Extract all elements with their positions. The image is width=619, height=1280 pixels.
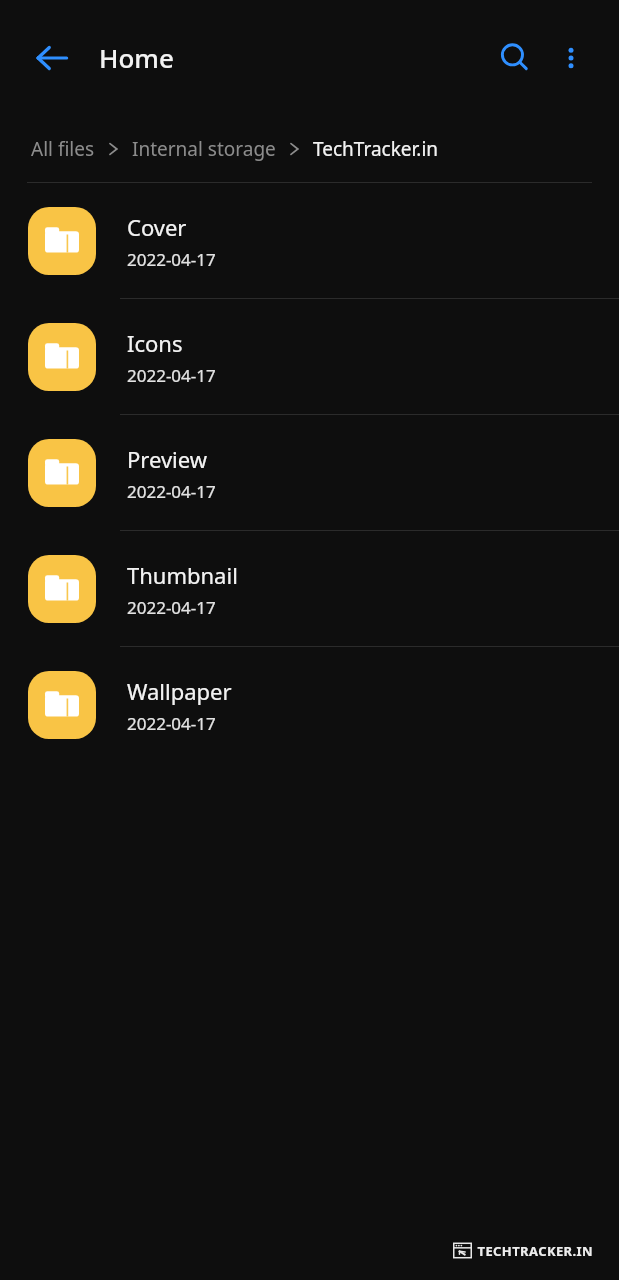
button[interactable]: Preview	[0, 415, 619, 531]
staticText: Icons	[127, 328, 183, 358]
staticText: TechTracker.in	[313, 136, 439, 162]
staticText: Thumbnail	[127, 560, 238, 590]
button[interactable]: Cover	[0, 183, 619, 299]
staticText: 2022-04-17	[127, 364, 216, 387]
staticText: 2022-04-17	[127, 248, 216, 271]
staticText: Wallpaper	[127, 676, 232, 706]
staticText: 2022-04-17	[127, 712, 216, 735]
button[interactable]: TechTracker.in	[311, 132, 441, 166]
button[interactable]: Wallpaper	[0, 647, 619, 763]
button[interactable]: Back	[24, 30, 80, 86]
staticText: 2022-04-17	[127, 596, 216, 619]
staticText: Internal storage	[132, 136, 276, 162]
button[interactable]: Internal storage	[130, 132, 278, 166]
staticText: Home	[99, 40, 174, 75]
staticText: Preview	[127, 444, 208, 474]
staticText: Cover	[127, 212, 187, 242]
button[interactable]: Icons	[0, 299, 619, 415]
button[interactable]: Thumbnail	[0, 531, 619, 647]
staticText: All files	[31, 136, 95, 162]
button[interactable]: All files	[29, 132, 97, 166]
staticText: 2022-04-17	[127, 480, 216, 503]
button[interactable]: More options	[545, 32, 597, 84]
staticText: TECHTRACKER.IN	[477, 1242, 593, 1260]
button[interactable]: Search	[487, 30, 543, 86]
